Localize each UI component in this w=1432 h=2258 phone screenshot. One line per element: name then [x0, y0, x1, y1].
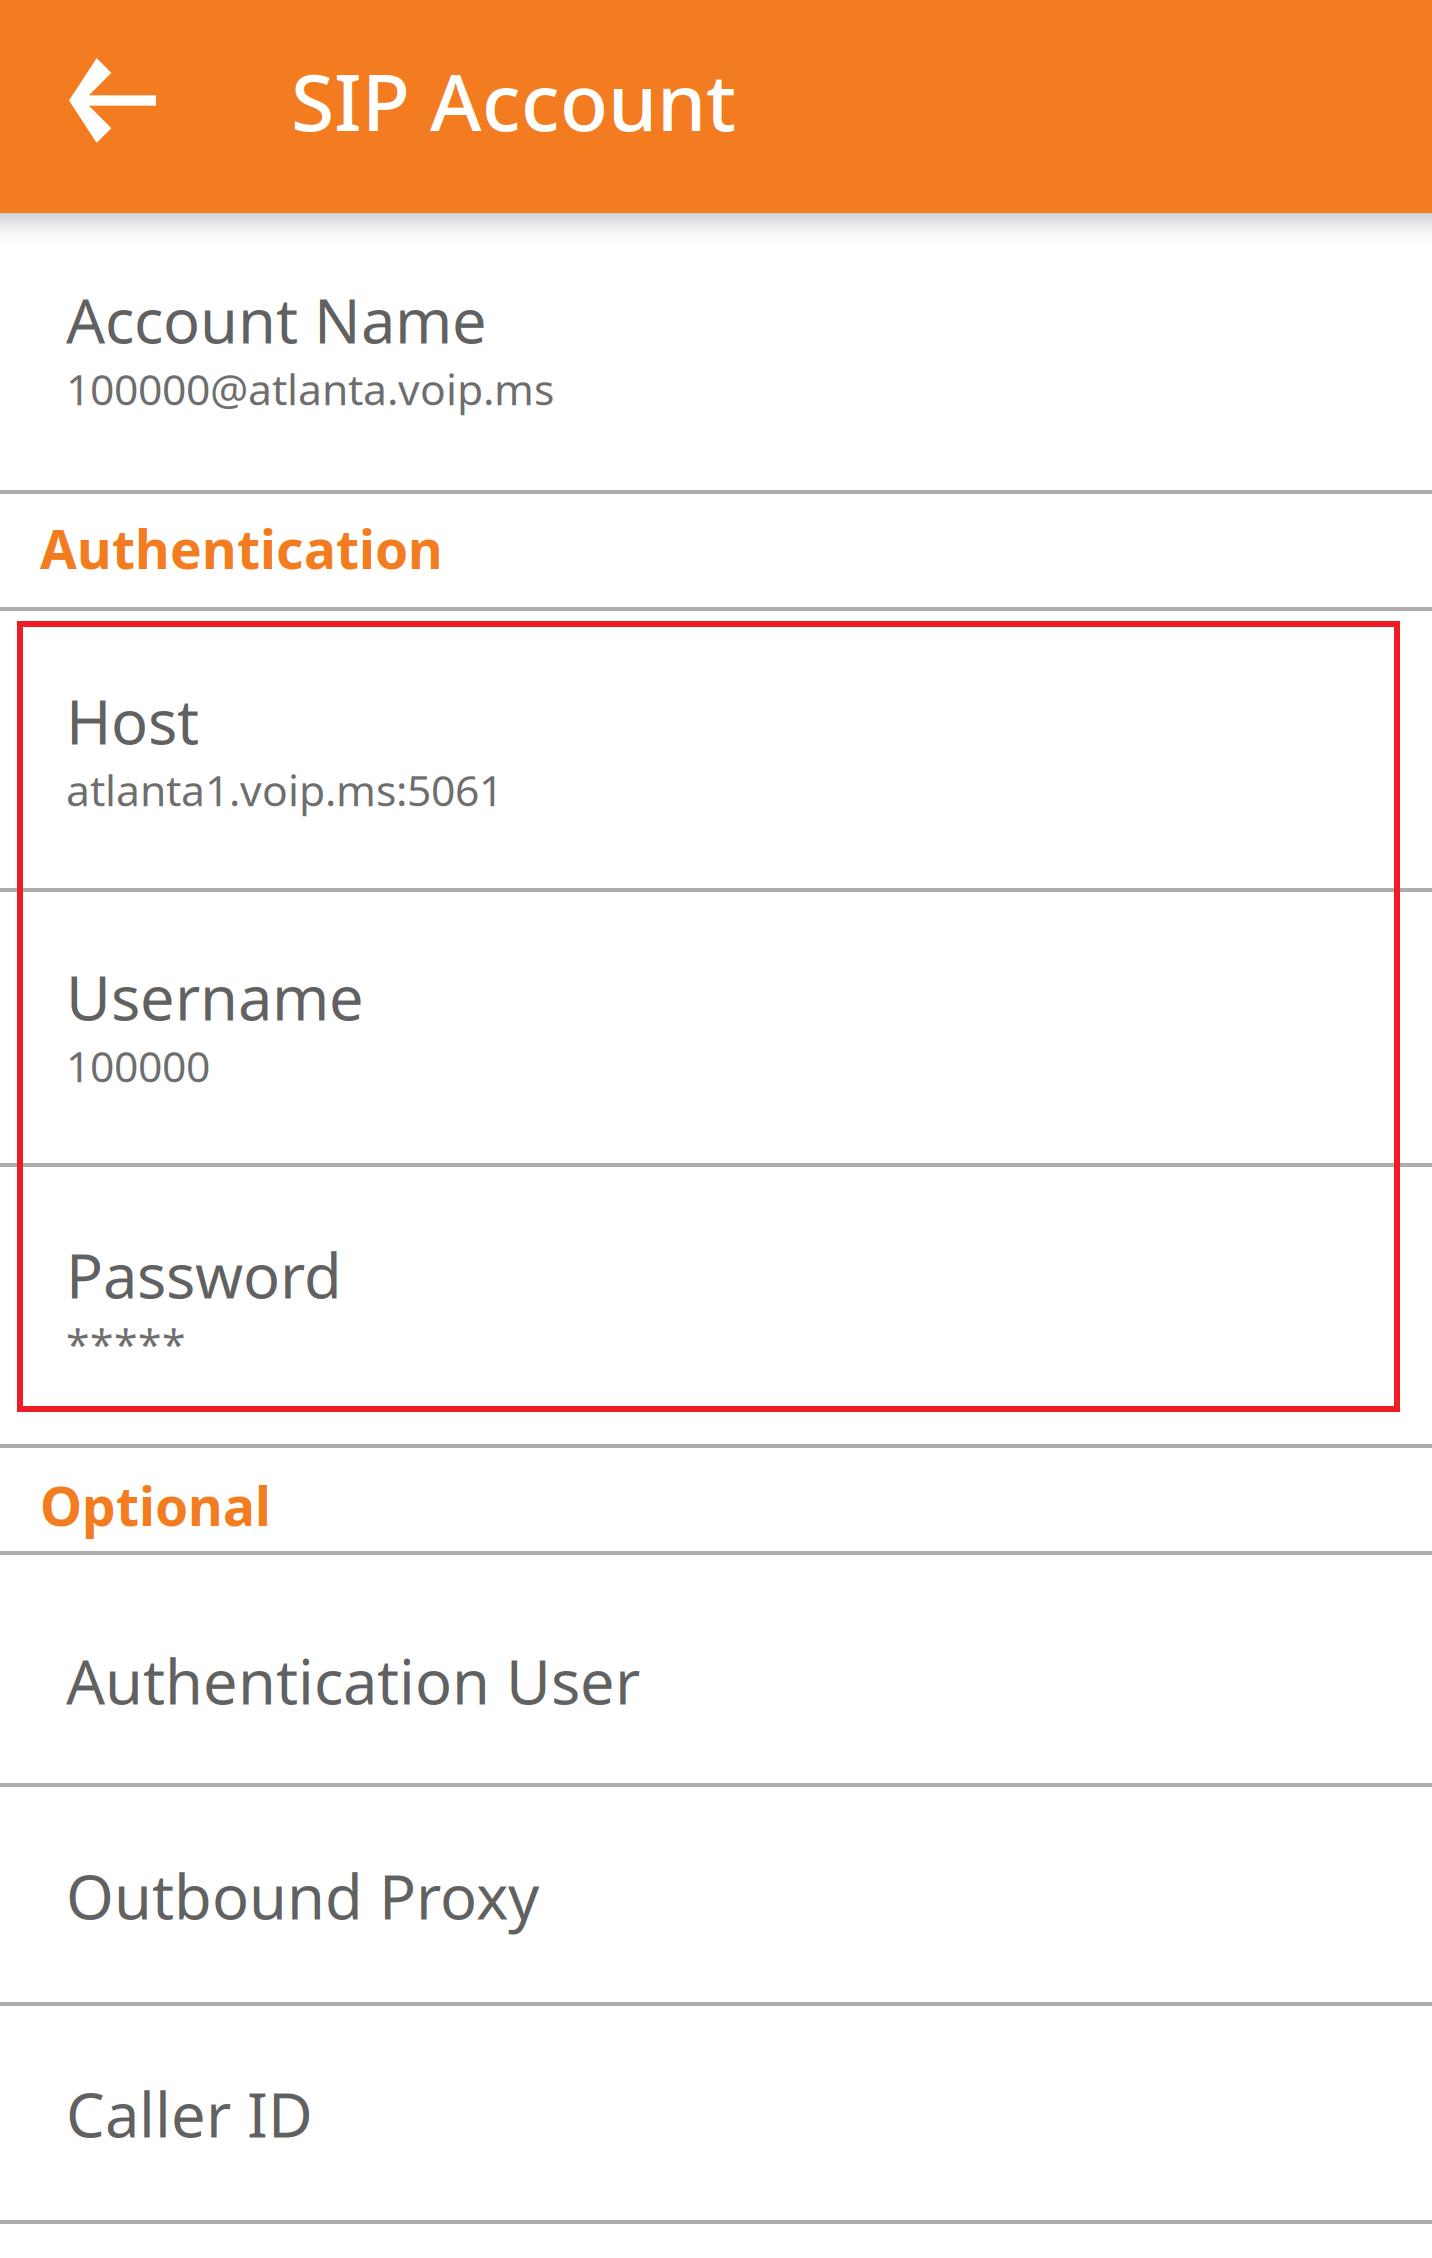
button[interactable]: Password — [0, 1167, 1432, 1444]
staticText: Account Name — [66, 279, 487, 360]
staticText: ***** — [66, 1315, 186, 1372]
button[interactable]: Authentication User — [0, 1555, 1432, 1783]
button[interactable]: Caller ID — [0, 2006, 1432, 2220]
staticText: SIP Account — [291, 48, 736, 153]
staticText: 100000@atlanta.voip.ms — [66, 360, 554, 417]
staticText: 100000 — [66, 1037, 210, 1094]
staticText: Outbound Proxy — [66, 1855, 539, 1936]
staticText: Password — [66, 1234, 342, 1315]
staticText: atlanta1.voip.ms:5061 — [66, 761, 503, 818]
button[interactable]: Back — [0, 0, 291, 201]
staticText: Authentication User — [66, 1640, 640, 1721]
staticText: Authentication — [40, 513, 443, 584]
staticText: Optional — [40, 1470, 271, 1541]
button[interactable]: Account Name — [0, 213, 1432, 490]
button[interactable]: Host — [0, 611, 1432, 888]
staticText: Caller ID — [66, 2073, 313, 2154]
button[interactable]: Username — [0, 892, 1432, 1163]
staticText: Host — [66, 680, 199, 761]
button[interactable]: Outbound Proxy — [0, 1787, 1432, 2002]
staticText: Username — [66, 956, 364, 1037]
